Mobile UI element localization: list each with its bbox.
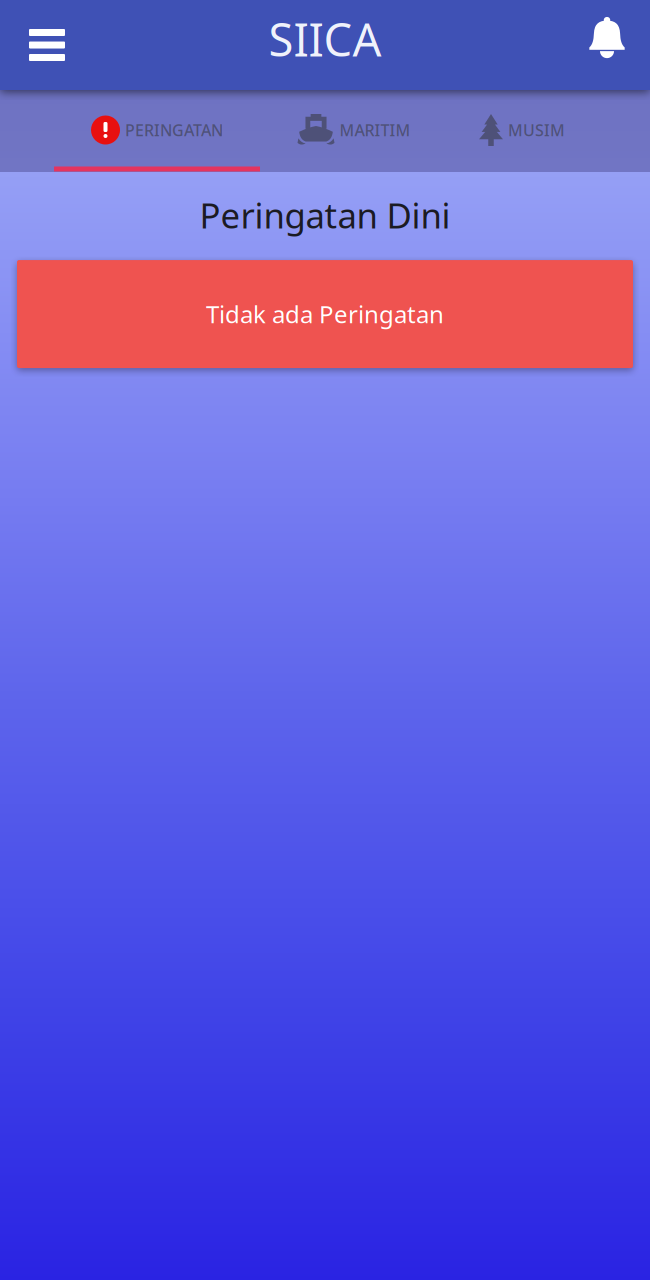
staticText: PERINGATAN xyxy=(125,119,223,141)
button[interactable]: Notifications xyxy=(579,21,627,69)
staticText: SIICA xyxy=(268,9,381,69)
button[interactable]: MUSIM xyxy=(448,90,596,166)
staticText: MUSIM xyxy=(508,119,565,141)
button[interactable]: PERINGATAN xyxy=(54,90,260,166)
button[interactable]: MARITIM xyxy=(260,90,448,166)
staticText: Tidak ada Peringatan xyxy=(206,298,444,330)
staticText: Peringatan Dini xyxy=(199,192,450,238)
button[interactable]: Menu xyxy=(23,21,71,69)
staticText: MARITIM xyxy=(339,119,410,141)
